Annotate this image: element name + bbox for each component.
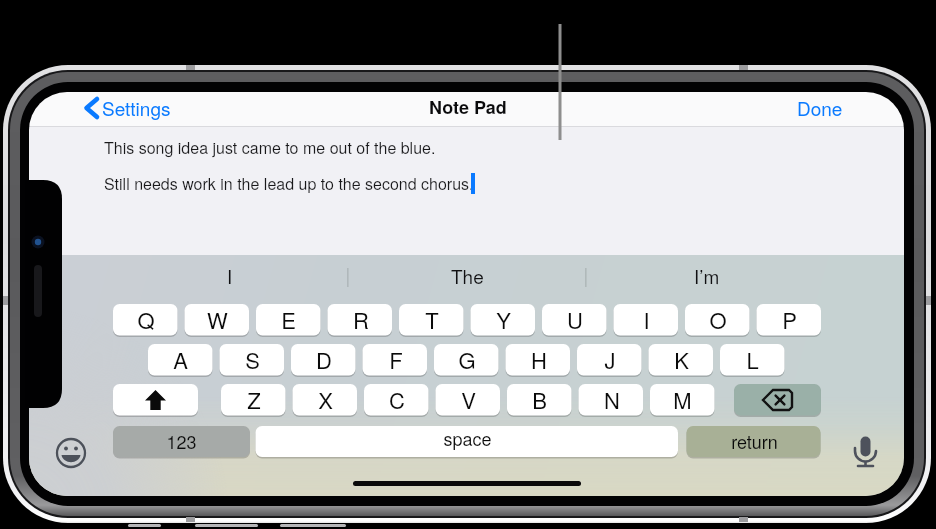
staticText: L [746, 344, 759, 376]
button[interactable]: P [757, 304, 822, 336]
button[interactable]: M [650, 384, 715, 416]
staticText: U [567, 304, 583, 336]
staticText: E [281, 304, 296, 336]
staticText: space [443, 425, 492, 451]
staticText: S [245, 344, 260, 376]
staticText: Q [137, 304, 155, 336]
button[interactable]: return [687, 425, 821, 456]
button[interactable]: L [720, 344, 785, 376]
button[interactable]: Shift [113, 384, 198, 416]
staticText: Settings [102, 94, 171, 121]
button[interactable]: Q [113, 304, 178, 336]
button[interactable]: R [328, 304, 393, 336]
button[interactable]: F [363, 344, 428, 376]
staticText: V [461, 384, 476, 416]
staticText: I [643, 304, 650, 336]
button[interactable]: N [579, 384, 644, 416]
button[interactable]: T [399, 304, 464, 336]
button[interactable]: Emoji keyboard [52, 434, 90, 472]
staticText: B [532, 384, 547, 416]
button[interactable]: Y [471, 304, 536, 336]
staticText: T [425, 304, 439, 336]
staticText: D [316, 344, 332, 376]
button[interactable]: Z [221, 384, 286, 416]
staticText: C [389, 384, 405, 416]
button[interactable]: 123 [113, 425, 250, 456]
button[interactable]: W [185, 304, 250, 336]
staticText: R [353, 304, 369, 336]
staticText: W [207, 304, 228, 336]
staticText: 123 [166, 428, 197, 454]
staticText: F [389, 344, 403, 376]
button[interactable]: S [220, 344, 285, 376]
button[interactable]: Dictation [847, 430, 885, 468]
staticText: J [604, 344, 616, 376]
button[interactable]: O [685, 304, 750, 336]
button[interactable]: U [542, 304, 607, 336]
staticText: return [731, 428, 778, 454]
button[interactable]: J [577, 344, 642, 376]
staticText: Y [496, 304, 511, 336]
button[interactable]: I’m [647, 260, 766, 290]
button[interactable]: Backspace [734, 384, 821, 416]
staticText: X [318, 384, 333, 416]
button[interactable]: E [256, 304, 321, 336]
button[interactable]: K [649, 344, 714, 376]
staticText: I’m [694, 262, 720, 289]
staticText: P [782, 304, 797, 336]
button[interactable]: B [507, 384, 572, 416]
button[interactable]: G [434, 344, 499, 376]
button[interactable]: Done [745, 91, 843, 123]
staticText: I [227, 262, 233, 289]
button[interactable]: D [291, 344, 356, 376]
staticText: Done [797, 94, 843, 121]
button[interactable]: A [148, 344, 213, 376]
staticText: Still needs work in the lead up to the s… [104, 172, 474, 195]
button[interactable]: I [170, 260, 289, 290]
staticText: H [531, 344, 547, 376]
staticText: M [673, 384, 692, 416]
staticText: Z [247, 384, 261, 416]
button[interactable]: X [293, 384, 358, 416]
button[interactable]: H [506, 344, 571, 376]
staticText: This song idea just came to me out of th… [104, 136, 436, 159]
staticText: Note Pad [429, 94, 507, 120]
button[interactable]: space [256, 422, 679, 453]
button[interactable]: Settings [80, 91, 180, 123]
button[interactable]: The [408, 260, 527, 290]
staticText: G [458, 344, 476, 376]
staticText: A [173, 344, 188, 376]
staticText: K [674, 344, 689, 376]
staticText: O [709, 304, 727, 336]
staticText: N [604, 384, 620, 416]
staticText: The [451, 262, 484, 289]
button[interactable]: C [364, 384, 429, 416]
button[interactable]: I [614, 304, 679, 336]
button[interactable]: V [436, 384, 501, 416]
